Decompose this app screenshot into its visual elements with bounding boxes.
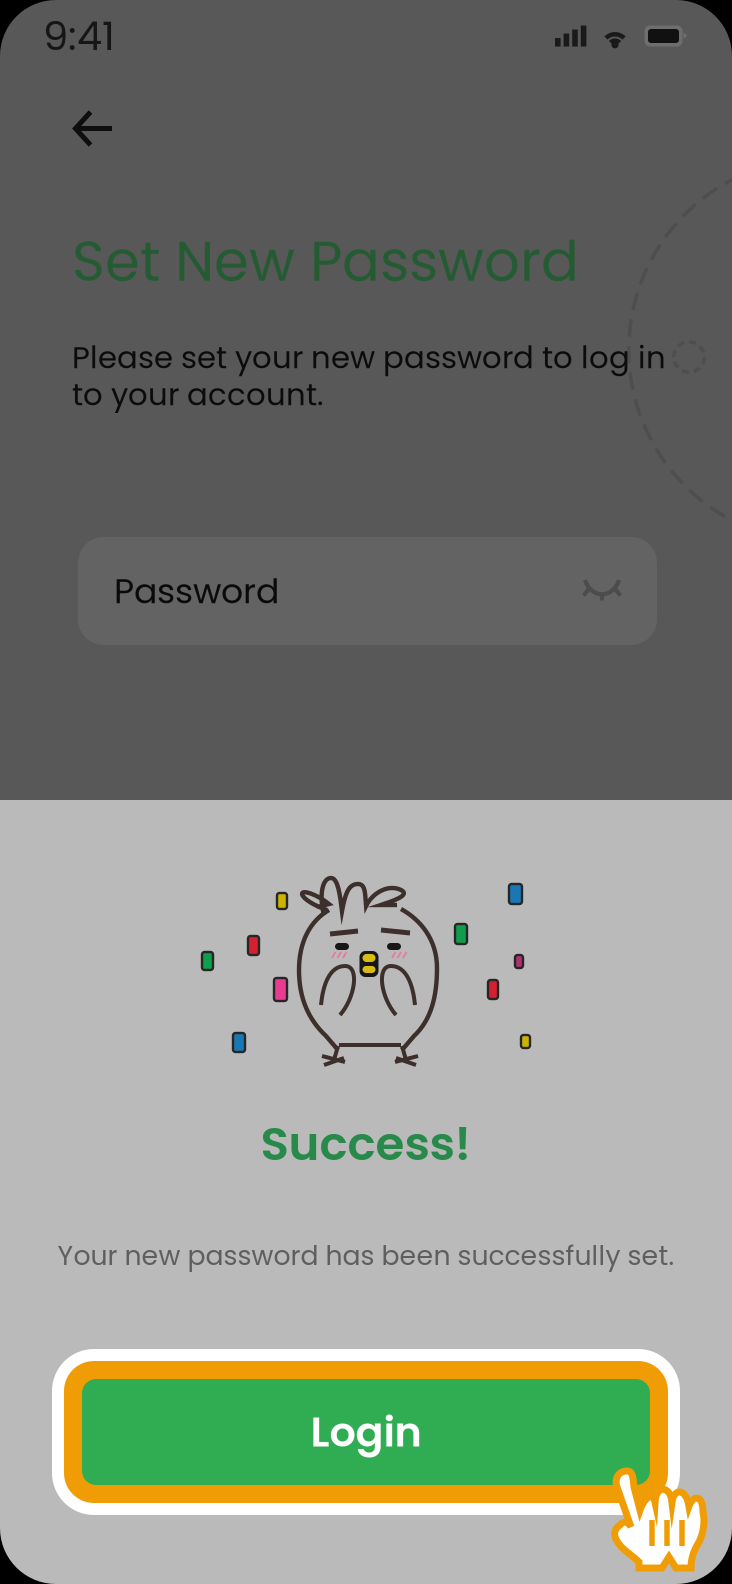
staticText: Your new password has been successfully … bbox=[57, 1237, 674, 1274]
staticText: Success! bbox=[260, 1111, 471, 1176]
button[interactable]: Password bbox=[78, 537, 657, 645]
button[interactable]: Login bbox=[52, 1349, 680, 1515]
staticText: to your account. bbox=[72, 373, 323, 416]
staticText: Set New Password bbox=[72, 222, 579, 300]
staticText: 9:41 bbox=[43, 8, 115, 64]
staticText: Please set your new password to log in bbox=[72, 336, 666, 379]
staticText: Password bbox=[114, 567, 279, 615]
button[interactable]: Back bbox=[57, 96, 143, 162]
staticText: Login bbox=[310, 1403, 421, 1461]
